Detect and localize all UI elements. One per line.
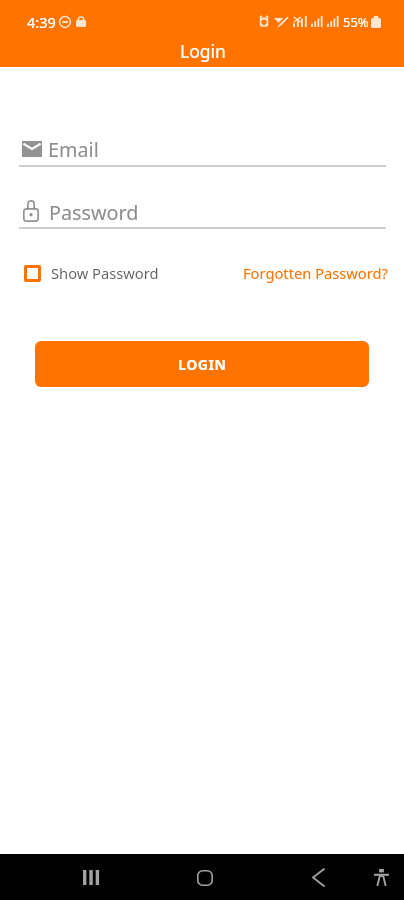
staticText: Email bbox=[48, 136, 99, 163]
staticText: Password bbox=[49, 199, 139, 226]
staticText: Show Password bbox=[51, 263, 159, 283]
staticText: 55% bbox=[343, 13, 369, 31]
button[interactable]: Recent apps bbox=[74, 861, 107, 894]
staticText: Login bbox=[180, 39, 226, 63]
staticText: 4:39 bbox=[27, 12, 56, 32]
button[interactable]: Accessibility bbox=[365, 861, 398, 894]
staticText: LOGIN bbox=[178, 355, 227, 374]
staticText: Forgotten Password? bbox=[243, 263, 388, 283]
button[interactable]: LOGIN bbox=[35, 341, 369, 387]
button[interactable]: Home bbox=[188, 861, 221, 894]
button[interactable]: Show Password bbox=[17, 258, 159, 288]
button[interactable]: Back bbox=[302, 861, 335, 894]
button[interactable]: Forgotten Password? bbox=[236, 258, 395, 288]
